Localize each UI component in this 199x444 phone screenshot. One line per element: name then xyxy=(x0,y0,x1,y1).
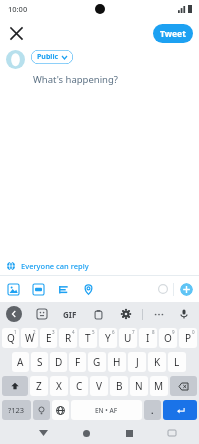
staticText: What's happening? xyxy=(33,73,118,86)
staticText: Everyone can reply xyxy=(21,261,89,271)
staticText: 5 xyxy=(92,329,95,335)
button[interactable]: More options xyxy=(152,307,166,321)
staticText: C xyxy=(76,379,83,393)
button[interactable]: Change language xyxy=(52,400,69,420)
staticText: EN • AF xyxy=(95,406,118,415)
staticText: L xyxy=(174,355,180,369)
button[interactable]: G xyxy=(88,352,106,372)
staticText: Tweet xyxy=(160,28,186,40)
staticText: K xyxy=(154,355,161,369)
staticText: N xyxy=(135,379,143,393)
button[interactable]: A xyxy=(12,352,29,372)
button[interactable]: Public xyxy=(31,50,73,64)
button[interactable]: ?123 xyxy=(2,400,31,420)
button[interactable]: Backspace xyxy=(170,376,197,396)
staticText: S xyxy=(37,355,43,369)
staticText: Z xyxy=(36,379,42,393)
button[interactable]: Settings xyxy=(119,307,133,321)
button[interactable]: I xyxy=(139,328,157,348)
button[interactable]: GIF xyxy=(63,309,77,320)
button[interactable]: Q xyxy=(2,328,19,348)
staticText: I xyxy=(146,331,150,345)
button[interactable]: Clipboard xyxy=(91,307,105,321)
button[interactable]: Home xyxy=(77,424,95,442)
button[interactable]: Add poll xyxy=(56,282,70,296)
button[interactable]: N xyxy=(130,376,148,396)
button[interactable]: Everyone can reply xyxy=(7,257,199,275)
button[interactable]: Back xyxy=(34,424,52,442)
button[interactable]: Y xyxy=(99,328,117,348)
staticText: Q xyxy=(7,331,15,345)
button[interactable]: Add location xyxy=(81,282,95,296)
button[interactable]: Voice input xyxy=(176,306,192,322)
button[interactable]: M xyxy=(150,376,168,396)
button[interactable]: H xyxy=(108,352,126,372)
staticText: 2 xyxy=(33,329,36,335)
button[interactable]: F xyxy=(69,352,86,372)
staticText: 3 xyxy=(52,329,55,335)
button[interactable]: T xyxy=(79,328,97,348)
button[interactable]: Add photo xyxy=(6,282,20,296)
button[interactable]: X xyxy=(50,376,68,396)
button[interactable]: L xyxy=(168,352,186,372)
button[interactable]: Tweet xyxy=(153,24,193,43)
staticText: V xyxy=(96,379,102,393)
staticText: D xyxy=(55,355,63,369)
staticText: 4 xyxy=(72,329,75,335)
button[interactable]: . xyxy=(144,400,161,420)
staticText: 0 xyxy=(192,329,195,335)
button[interactable]: Back xyxy=(6,306,22,322)
staticText: J xyxy=(136,355,139,369)
button[interactable]: Emoji xyxy=(33,400,50,420)
staticText: X xyxy=(56,379,62,393)
staticText: ?123 xyxy=(8,405,25,415)
button[interactable]: K xyxy=(148,352,166,372)
staticText: F xyxy=(75,355,81,369)
staticText: 7 xyxy=(132,329,135,335)
button[interactable]: P xyxy=(179,328,197,348)
staticText: P xyxy=(185,331,192,345)
button[interactable]: Shift xyxy=(2,376,28,396)
staticText: Public xyxy=(37,52,59,62)
button[interactable]: Recents xyxy=(120,424,138,442)
button[interactable]: Z xyxy=(30,376,48,396)
button[interactable]: Enter xyxy=(163,400,197,420)
staticText: Y xyxy=(105,331,111,345)
button[interactable]: R xyxy=(59,328,77,348)
staticText: A xyxy=(17,355,24,369)
staticText: B xyxy=(116,379,123,393)
staticText: M xyxy=(154,379,164,393)
staticText: 10:00 xyxy=(8,4,28,14)
button[interactable]: Keyboard xyxy=(163,424,181,442)
staticText: O xyxy=(164,331,172,345)
button[interactable]: D xyxy=(50,352,67,372)
staticText: R xyxy=(65,331,72,345)
staticText: . xyxy=(151,404,154,416)
staticText: 1 xyxy=(14,329,17,335)
button[interactable]: S xyxy=(31,352,48,372)
staticText: E xyxy=(46,331,52,345)
staticText: G xyxy=(93,355,101,369)
staticText: H xyxy=(113,355,121,369)
staticText: 9 xyxy=(172,329,175,335)
button[interactable]: C xyxy=(70,376,88,396)
button[interactable]: B xyxy=(110,376,128,396)
button[interactable]: V xyxy=(90,376,108,396)
staticText: W xyxy=(25,331,35,345)
button[interactable]: W xyxy=(21,328,38,348)
staticText: GIF xyxy=(63,309,77,320)
staticText: T xyxy=(85,331,91,345)
staticText: U xyxy=(124,331,132,345)
button[interactable]: E xyxy=(40,328,57,348)
button[interactable]: U xyxy=(119,328,137,348)
button[interactable]: Emoji xyxy=(35,307,49,321)
button[interactable]: O xyxy=(159,328,177,348)
button[interactable]: Add GIF xyxy=(31,282,45,296)
button[interactable]: Add tweet xyxy=(180,283,193,296)
staticText: 8 xyxy=(152,329,155,335)
button[interactable]: Close xyxy=(4,21,28,45)
button[interactable]: EN • AF xyxy=(71,400,142,420)
staticText: 6 xyxy=(112,329,115,335)
button[interactable]: J xyxy=(128,352,146,372)
